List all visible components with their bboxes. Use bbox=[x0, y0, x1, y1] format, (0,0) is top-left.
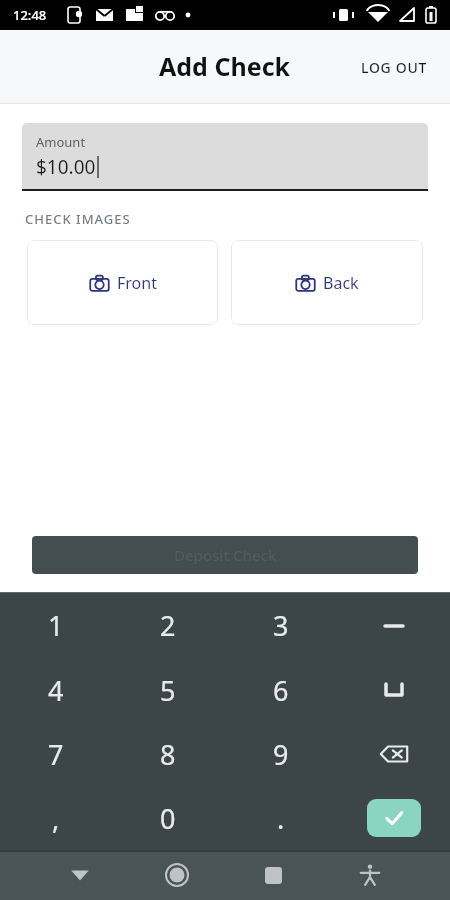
button[interactable]: Done bbox=[367, 799, 421, 837]
button[interactable]: Done bbox=[337, 786, 450, 850]
button[interactable]: Front bbox=[27, 240, 218, 325]
staticText: 8 bbox=[160, 736, 176, 773]
button[interactable]: 9 bbox=[224, 722, 337, 786]
button[interactable]: Hide keyboard bbox=[56, 851, 104, 899]
button[interactable]: 8 bbox=[112, 722, 224, 786]
button[interactable]: Home bbox=[153, 851, 201, 899]
staticText: 5 bbox=[160, 672, 176, 709]
staticText: 6 bbox=[273, 672, 289, 709]
button[interactable]: 2 bbox=[112, 593, 224, 658]
other: Backspace bbox=[379, 739, 409, 769]
button[interactable]: 7 bbox=[0, 722, 112, 786]
button[interactable]: Amount bbox=[22, 123, 428, 191]
staticText: 3 bbox=[273, 607, 289, 644]
button[interactable]: 4 bbox=[0, 658, 112, 722]
button[interactable]: LOG OUT bbox=[349, 48, 440, 87]
button[interactable]: . bbox=[224, 786, 337, 850]
button[interactable]: Deposit Check bbox=[32, 536, 418, 574]
staticText: 12:48 bbox=[13, 6, 47, 24]
staticText: Amount bbox=[36, 133, 86, 151]
button[interactable]: Backspace bbox=[337, 722, 450, 786]
button[interactable]: 0 bbox=[112, 786, 224, 850]
staticText: 1 bbox=[48, 607, 64, 644]
staticText: $10.00 bbox=[36, 154, 96, 180]
staticText: 0 bbox=[160, 800, 176, 837]
staticText: 2 bbox=[160, 607, 176, 644]
staticText: Front bbox=[117, 272, 157, 294]
staticText: Deposit Check bbox=[174, 545, 277, 565]
button[interactable] bbox=[337, 658, 450, 722]
staticText: 4 bbox=[48, 672, 64, 709]
button[interactable]: 3 bbox=[224, 593, 337, 658]
staticText: . bbox=[277, 800, 285, 837]
button[interactable]: Accessibility bbox=[346, 851, 394, 899]
button[interactable]: 1 bbox=[0, 593, 112, 658]
staticText: CHECK IMAGES bbox=[25, 210, 131, 228]
staticText: 9 bbox=[273, 736, 289, 773]
staticText: Add Check bbox=[159, 49, 291, 83]
staticText: LOG OUT bbox=[361, 58, 428, 77]
button[interactable]: 6 bbox=[224, 658, 337, 722]
button[interactable]: , bbox=[0, 786, 112, 850]
button[interactable]: 5 bbox=[112, 658, 224, 722]
button[interactable]: Back bbox=[231, 240, 423, 325]
staticText: Back bbox=[323, 272, 359, 294]
staticText: , bbox=[52, 800, 60, 837]
button[interactable]: Recent apps bbox=[249, 851, 297, 899]
button[interactable] bbox=[337, 593, 450, 658]
staticText: 7 bbox=[48, 736, 64, 773]
